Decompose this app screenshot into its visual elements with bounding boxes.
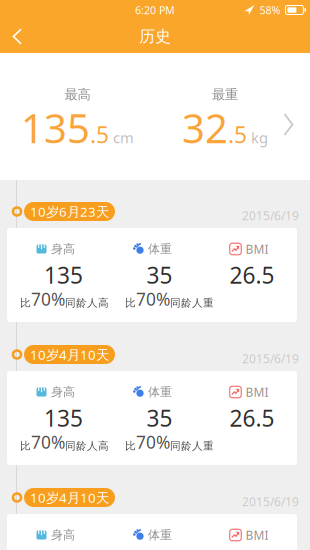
- staticText: 历史: [139, 27, 171, 46]
- staticText: 身高: [51, 385, 75, 399]
- staticText: 比70%同龄人高: [20, 287, 109, 310]
- staticText: 26.5: [229, 260, 274, 290]
- staticText: 身高: [51, 528, 75, 542]
- staticText: 最高: [64, 86, 90, 103]
- staticText: cm: [113, 128, 134, 147]
- staticText: 10岁4月10天: [30, 346, 109, 363]
- staticText: 26.5: [229, 403, 274, 433]
- staticText: kg: [251, 128, 268, 147]
- staticText: 135: [44, 403, 83, 433]
- staticText: 体重: [148, 242, 172, 256]
- button[interactable]: 最高: [0, 53, 310, 180]
- staticText: 6:20 PM: [135, 3, 175, 17]
- staticText: 135: [44, 260, 83, 290]
- staticText: 10岁4月10天: [30, 489, 109, 506]
- staticText: BMI: [245, 241, 268, 257]
- staticText: 身高: [51, 242, 75, 256]
- button[interactable]: 身高: [7, 228, 297, 322]
- staticText: 58%: [259, 3, 280, 17]
- staticText: 35: [146, 260, 172, 290]
- staticText: 2015/6/19: [242, 493, 299, 509]
- staticText: 体重: [148, 528, 172, 542]
- staticText: 比70%同龄人重: [125, 430, 214, 453]
- staticText: BMI: [245, 384, 268, 400]
- staticText: 135.5: [21, 101, 109, 154]
- staticText: 2015/6/19: [242, 350, 299, 366]
- staticText: 体重: [148, 385, 172, 399]
- staticText: 2015/6/19: [242, 207, 299, 223]
- button[interactable]: [0, 20, 22, 53]
- staticText: 最重: [212, 86, 238, 103]
- staticText: BMI: [245, 527, 268, 543]
- staticText: 10岁6月23天: [30, 203, 109, 220]
- button[interactable]: 身高: [7, 371, 297, 465]
- staticText: 比70%同龄人高: [20, 430, 109, 453]
- staticText: 35: [146, 403, 172, 433]
- staticText: 32.5: [182, 101, 247, 154]
- button[interactable]: 身高: [7, 514, 297, 550]
- staticText: 比70%同龄人重: [125, 287, 214, 310]
